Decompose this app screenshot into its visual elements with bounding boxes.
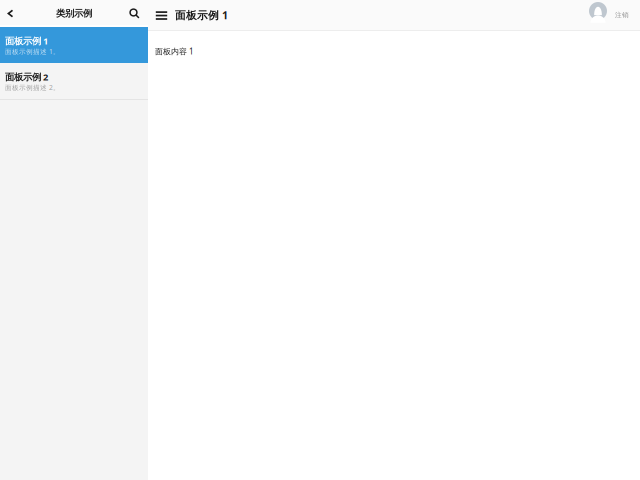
staticText: 注销 xyxy=(615,11,629,19)
staticText: 面板示例描述 2。 xyxy=(5,83,60,92)
button[interactable]: 面板示例 1 xyxy=(0,27,148,63)
button[interactable]: 注销 xyxy=(589,0,640,30)
staticText: 面板示例描述 1。 xyxy=(5,47,60,56)
staticText: 面板示例 1 xyxy=(175,8,228,22)
button[interactable]: 面板示例 2 xyxy=(0,63,148,99)
button[interactable]: Back xyxy=(0,0,21,25)
staticText: 面板示例 1 xyxy=(5,35,48,47)
button[interactable]: Search xyxy=(121,0,148,25)
staticText: 面板示例 2 xyxy=(5,71,48,83)
button[interactable]: Menu xyxy=(148,0,175,30)
staticText: 类别示例 xyxy=(56,8,92,19)
staticText: 面板内容 1 xyxy=(155,46,194,57)
